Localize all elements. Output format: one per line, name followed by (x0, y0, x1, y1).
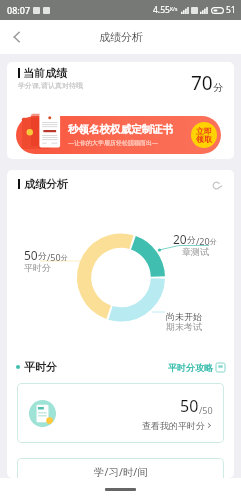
staticText: 分 (210, 237, 217, 246)
staticText: 学分课,请认真对待哦 (18, 81, 83, 91)
staticText: 秒领名校权威定制证书 (68, 123, 173, 136)
staticText: 分 (213, 81, 223, 94)
staticText: 4.55 (153, 4, 170, 16)
staticText: 70 (191, 70, 213, 96)
button[interactable]: 平时分攻略 (168, 362, 225, 373)
staticText: 分 (38, 251, 47, 262)
staticText: 08:07 (7, 4, 31, 16)
staticText: 50 (24, 247, 38, 263)
staticText: 平时分 (24, 262, 51, 273)
button[interactable]: Refresh (208, 177, 225, 194)
staticText: 成绩分析 (99, 30, 143, 44)
staticText: 50 (180, 395, 199, 417)
staticText: 立即 领取 (196, 126, 212, 145)
staticText: 分 (61, 253, 68, 262)
staticText: 51 (226, 4, 236, 16)
button[interactable]: 50 (17, 383, 224, 443)
staticText: 分 (187, 235, 196, 246)
staticText: 学/习/时/间 (94, 465, 148, 478)
staticText: 平时分攻略 (168, 362, 213, 373)
staticText: 20 (173, 231, 187, 247)
staticText: 当前成绩 (23, 66, 67, 80)
staticText: 章测试 (182, 246, 209, 257)
staticText: 成绩分析 (24, 177, 68, 191)
staticText: 查看我的平时分 (142, 420, 205, 431)
staticText: /50 (199, 404, 213, 416)
button[interactable]: Back (6, 26, 28, 48)
staticText: 平时分 (24, 360, 57, 374)
staticText: 期末考试 (166, 321, 202, 332)
staticText: /20 (196, 235, 210, 247)
button[interactable] (16, 116, 221, 154)
staticText: /50 (47, 251, 61, 263)
staticText: —让你的大学履历轻松脱颖而出— (68, 139, 159, 147)
staticText: K/s (170, 6, 178, 13)
button[interactable]: 立即 领取 (191, 122, 217, 148)
button[interactable]: 学/习/时/间 (17, 458, 224, 478)
staticText: 尚未开始 (166, 311, 202, 322)
